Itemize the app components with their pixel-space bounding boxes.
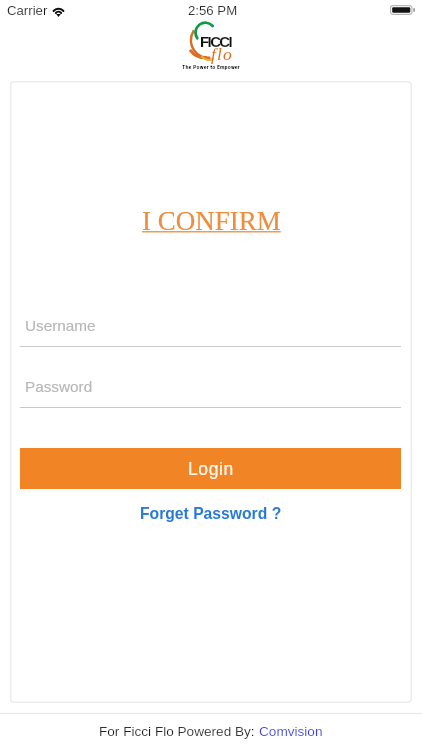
staticText: Username [25, 317, 96, 334]
staticText: flo [211, 44, 234, 63]
button[interactable]: Comvision [259, 724, 323, 739]
button[interactable]: I CONFIRM [142, 206, 281, 236]
button[interactable]: Login [20, 448, 401, 489]
button[interactable]: Password [20, 375, 401, 408]
staticText: Login [188, 459, 234, 479]
staticText: 2:56 PM [188, 3, 238, 18]
staticText: The Power to Empower [182, 63, 240, 70]
button[interactable]: Forget Password ? [134, 502, 288, 526]
staticText: FICCI [200, 33, 232, 50]
other: Battery full [390, 5, 418, 17]
staticText: Password [25, 378, 93, 395]
other: Wifi signal [51, 5, 67, 17]
staticText: Carrier [7, 3, 48, 18]
button[interactable]: Username [20, 314, 401, 347]
staticText: For Ficci Flo Powered By: [99, 724, 259, 739]
